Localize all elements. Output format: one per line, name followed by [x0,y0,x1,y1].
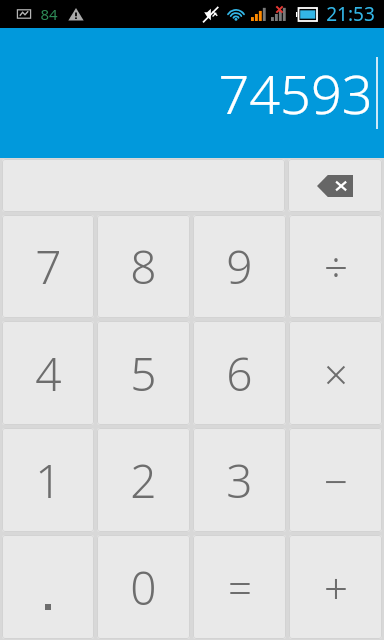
staticText: 1 [35,449,62,512]
staticText: ÷ [324,238,348,295]
staticText: 7 [35,235,62,298]
button[interactable]: Clear [2,159,285,212]
staticText: 4 [35,342,62,405]
button[interactable]: ÷ [289,215,382,318]
staticText: − [324,452,348,509]
button[interactable]: × [289,321,382,425]
staticText: 84 [40,4,58,24]
button[interactable]: 1 [2,428,94,532]
button[interactable]: 5 [97,321,190,425]
staticText: 2 [130,449,157,512]
button[interactable]: 8 [97,215,190,318]
staticText: 74593 [218,56,373,130]
button[interactable]: + [289,535,382,639]
staticText: 5 [130,342,157,405]
staticText: = [228,559,252,616]
button[interactable]: Backspace [288,159,382,212]
button[interactable]: 0 [97,535,190,639]
staticText: 9 [226,235,253,298]
staticText: × [324,345,348,402]
staticText: 21:53 [326,1,375,27]
button[interactable]: 7 [2,215,94,318]
staticText: 8 [130,235,157,298]
button[interactable]: − [289,428,382,532]
button[interactable]: 2 [97,428,190,532]
button[interactable]: 6 [193,321,286,425]
staticText: 3 [226,449,253,512]
staticText: 0 [130,556,157,619]
staticText: + [324,559,348,616]
button[interactable]: 9 [193,215,286,318]
button[interactable]: 4 [2,321,94,425]
staticText: 6 [226,342,253,405]
button[interactable]: = [193,535,286,639]
button[interactable]: . [2,535,94,639]
button[interactable]: 3 [193,428,286,532]
